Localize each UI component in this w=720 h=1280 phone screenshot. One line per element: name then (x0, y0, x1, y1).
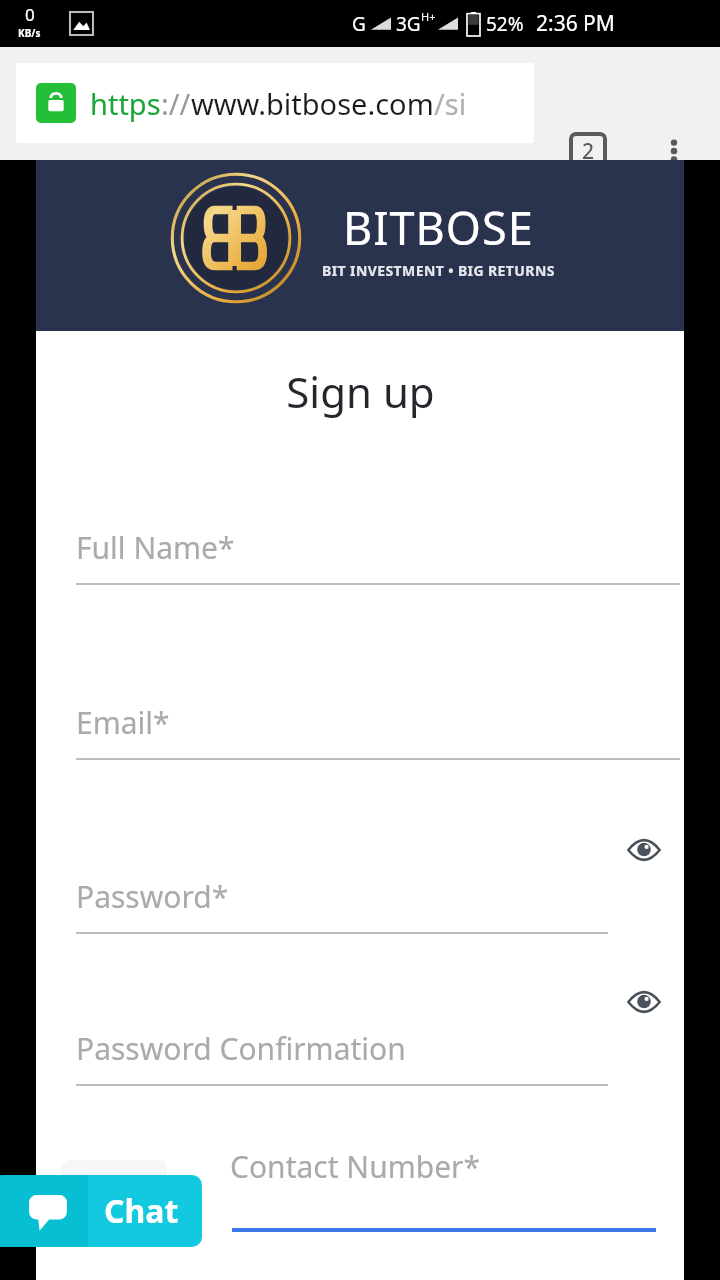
staticText: /si (434, 84, 467, 123)
staticText: Email* (76, 702, 170, 743)
staticText: Password* (76, 876, 229, 917)
button[interactable]: BITBOSE (166, 168, 555, 308)
button[interactable]: Show password (36, 870, 684, 946)
staticText: 3G (396, 11, 421, 37)
button[interactable]: Full Name* (36, 521, 684, 597)
button[interactable]: Show password (618, 976, 670, 1028)
button[interactable]: Chat (0, 1175, 202, 1247)
staticText: Password Confirmation (76, 1028, 406, 1069)
staticText: :// (161, 84, 191, 123)
staticText: Sign up (286, 363, 435, 420)
staticText: 2 (582, 137, 595, 166)
button[interactable]: https (16, 63, 534, 143)
staticText: www.bitbose.com (191, 84, 434, 123)
staticText: BIT INVESTMENT • BIG RETURNS (322, 261, 555, 280)
staticText: 52% (486, 11, 524, 37)
staticText: Full Name* (76, 527, 235, 568)
button[interactable]: Contact Number* (36, 1126, 684, 1246)
staticText: KB/s (18, 26, 41, 40)
staticText: 0 (25, 3, 35, 26)
staticText: H+ (421, 9, 436, 24)
staticText: Chat (104, 1189, 179, 1233)
button[interactable]: Tabs (566, 129, 610, 173)
button[interactable]: Show password (618, 824, 670, 876)
staticText: G (352, 11, 366, 37)
staticText: https (90, 84, 161, 123)
staticText: 2:36 PM (536, 9, 615, 38)
button[interactable]: Show password (36, 1022, 684, 1098)
button[interactable]: Email* (36, 696, 684, 772)
staticText: BITBOSE (343, 197, 534, 258)
staticText: Contact Number* (230, 1146, 481, 1187)
button[interactable]: More options (652, 129, 696, 173)
